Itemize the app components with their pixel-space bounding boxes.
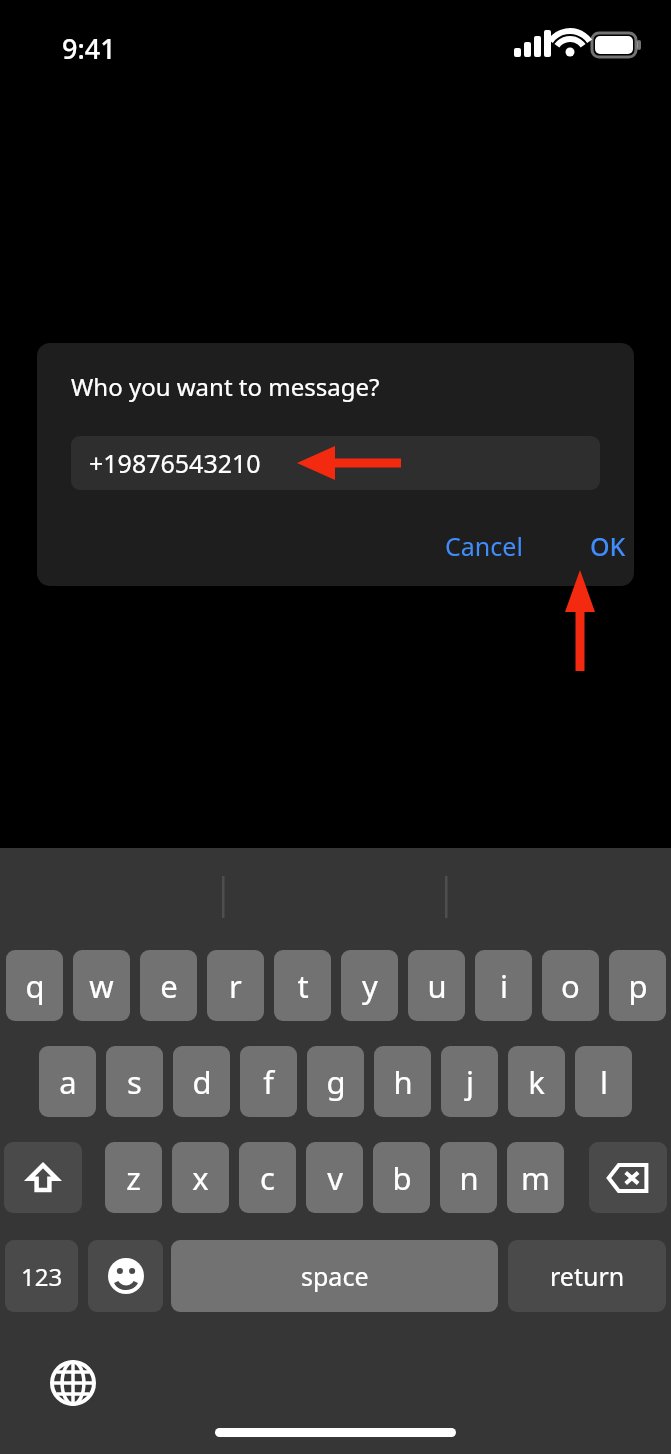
staticText: g: [326, 1061, 346, 1103]
staticText: l: [600, 1061, 608, 1103]
staticText: n: [459, 1157, 479, 1199]
button[interactable]: o: [542, 950, 599, 1021]
staticText: v: [327, 1157, 343, 1199]
button[interactable]: u: [408, 950, 465, 1021]
button[interactable]: q: [6, 950, 63, 1021]
staticText: 9:41: [62, 30, 116, 67]
button[interactable]: 123: [5, 1240, 78, 1312]
staticText: w: [89, 965, 114, 1007]
button[interactable]: c: [239, 1142, 296, 1213]
button[interactable]: v: [306, 1142, 363, 1213]
staticText: Cancel: [445, 529, 523, 563]
button[interactable]: z: [105, 1142, 162, 1213]
staticText: u: [427, 965, 447, 1007]
button[interactable]: space: [171, 1240, 498, 1312]
button[interactable]: p: [609, 950, 666, 1021]
button[interactable]: k: [508, 1046, 565, 1117]
button[interactable]: f: [240, 1046, 297, 1117]
staticText: k: [528, 1061, 545, 1103]
staticText: y: [362, 965, 378, 1007]
button[interactable]: n: [440, 1142, 497, 1213]
staticText: p: [628, 965, 648, 1007]
staticText: OK: [590, 529, 626, 563]
staticText: x: [192, 1157, 209, 1199]
staticText: +19876543210: [89, 446, 261, 480]
button[interactable]: +19876543210: [71, 436, 600, 490]
button[interactable]: b: [373, 1142, 430, 1213]
button[interactable]: s: [106, 1046, 163, 1117]
button[interactable]: Change keyboard language: [50, 1360, 96, 1406]
button[interactable]: j: [441, 1046, 498, 1117]
button[interactable]: return: [508, 1240, 666, 1312]
button[interactable]: Backspace: [589, 1142, 667, 1213]
button[interactable]: h: [374, 1046, 431, 1117]
button[interactable]: g: [307, 1046, 364, 1117]
staticText: Who you want to message?: [71, 370, 380, 403]
button[interactable]: w: [73, 950, 130, 1021]
staticText: h: [393, 1061, 413, 1103]
staticText: a: [59, 1061, 77, 1103]
staticText: return: [550, 1259, 625, 1293]
button[interactable]: y: [341, 950, 398, 1021]
button[interactable]: d: [173, 1046, 230, 1117]
staticText: e: [160, 965, 178, 1007]
button[interactable]: OK: [568, 519, 634, 573]
staticText: t: [297, 965, 309, 1007]
button[interactable]: r: [207, 950, 264, 1021]
staticText: b: [392, 1157, 412, 1199]
button[interactable]: t: [274, 950, 331, 1021]
staticText: s: [127, 1061, 142, 1103]
button[interactable]: e: [140, 950, 197, 1021]
button[interactable]: a: [39, 1046, 96, 1117]
staticText: z: [126, 1157, 141, 1199]
button[interactable]: x: [172, 1142, 229, 1213]
staticText: q: [25, 965, 45, 1007]
staticText: o: [561, 965, 580, 1007]
staticText: c: [260, 1157, 275, 1199]
staticText: i: [500, 965, 508, 1007]
staticText: d: [192, 1061, 212, 1103]
button[interactable]: l: [575, 1046, 632, 1117]
staticText: f: [263, 1061, 274, 1103]
staticText: r: [229, 965, 242, 1007]
staticText: 123: [21, 1260, 63, 1293]
staticText: space: [301, 1259, 369, 1293]
button[interactable]: Cancel: [423, 519, 545, 573]
staticText: m: [521, 1157, 550, 1199]
button[interactable]: Emoji: [88, 1240, 163, 1312]
staticText: j: [466, 1061, 474, 1103]
button[interactable]: i: [475, 950, 532, 1021]
button[interactable]: Shift: [4, 1142, 82, 1213]
button[interactable]: m: [507, 1142, 564, 1213]
